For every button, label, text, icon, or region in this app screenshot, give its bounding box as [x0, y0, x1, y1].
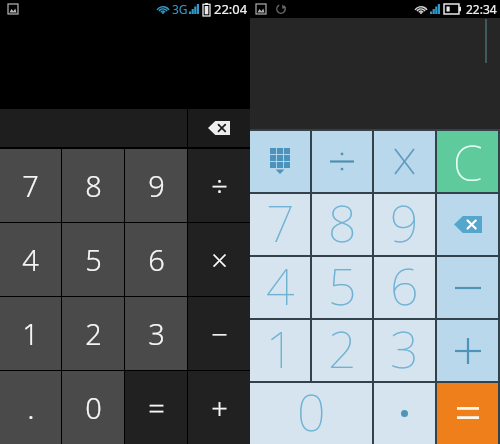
button[interactable]: 7 — [0, 149, 61, 222]
staticText: 9 — [148, 166, 165, 205]
staticText: 6 — [148, 240, 165, 279]
staticText: ÷ — [211, 166, 228, 205]
button[interactable]: Backspace — [437, 194, 498, 255]
button[interactable]: Multiply — [374, 131, 435, 192]
button[interactable]: 8 — [62, 149, 124, 222]
button[interactable]: 6 — [125, 223, 187, 296]
staticText: 0 — [85, 388, 102, 427]
button[interactable]: = — [125, 371, 187, 444]
button[interactable]: 2 — [312, 320, 372, 381]
staticText: 1 — [22, 314, 39, 353]
staticText: 2 — [85, 314, 102, 353]
button[interactable]: 8 — [312, 194, 372, 255]
button[interactable]: Plus — [437, 320, 498, 381]
button[interactable]: × — [188, 223, 250, 296]
button[interactable]: 4 — [0, 223, 61, 296]
staticText: 7 — [266, 189, 295, 250]
button[interactable]: 3 — [374, 320, 435, 381]
button[interactable]: 1 — [0, 297, 61, 370]
staticText: 1 — [266, 315, 295, 376]
button[interactable]: Backspace — [188, 109, 250, 147]
staticText: 8 — [328, 189, 357, 250]
button[interactable]: + — [188, 371, 250, 444]
staticText: 7 — [22, 166, 39, 205]
button[interactable]: 4 — [250, 257, 310, 318]
staticText: − — [211, 314, 228, 353]
button[interactable]: 6 — [374, 257, 435, 318]
button[interactable]: 0 — [62, 371, 124, 444]
staticText: 0 — [297, 378, 326, 439]
button[interactable]: 1 — [250, 320, 310, 381]
button[interactable]: Keypad — [250, 131, 310, 192]
staticText: 3 — [390, 315, 419, 376]
staticText: = — [148, 388, 165, 427]
staticText: 8 — [85, 166, 102, 205]
button[interactable]: 9 — [125, 149, 187, 222]
button[interactable]: ÷ — [188, 149, 250, 222]
button[interactable]: 9 — [374, 194, 435, 255]
button[interactable]: 7 — [250, 194, 310, 255]
button[interactable]: − — [188, 297, 250, 370]
staticText: 6 — [390, 252, 419, 313]
staticText: 2 — [328, 315, 357, 376]
staticText: 3 — [148, 314, 165, 353]
button[interactable]: 0 — [250, 383, 372, 444]
staticText: 4 — [22, 240, 39, 279]
button[interactable]: Divide — [312, 131, 372, 192]
button[interactable]: 2 — [62, 297, 124, 370]
staticText: × — [211, 240, 228, 279]
button[interactable]: 5 — [62, 223, 124, 296]
staticText: 4 — [266, 252, 295, 313]
staticText: + — [211, 388, 228, 427]
button[interactable]: . — [0, 371, 61, 444]
staticText: 5 — [85, 240, 102, 279]
button[interactable]: 5 — [312, 257, 372, 318]
button[interactable]: Decimal point — [374, 383, 435, 444]
staticText: 3G — [172, 1, 188, 17]
staticText: C — [453, 130, 483, 191]
staticText: 9 — [390, 189, 419, 250]
staticText: 22:04 — [214, 0, 248, 18]
button[interactable]: Minus — [437, 257, 498, 318]
staticText: 22:34 — [466, 1, 497, 17]
staticText: . — [27, 387, 35, 428]
staticText: 5 — [328, 252, 357, 313]
button[interactable]: Equals — [437, 383, 498, 444]
button[interactable]: 3 — [125, 297, 187, 370]
button[interactable]: Clear — [437, 131, 498, 192]
